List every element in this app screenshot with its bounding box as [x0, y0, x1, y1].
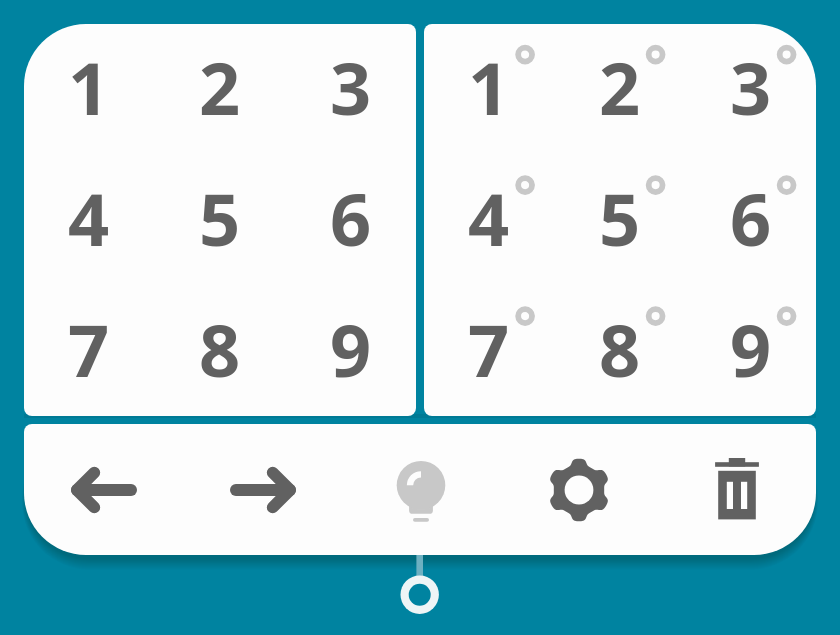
button[interactable]: 8 [154, 285, 285, 416]
button[interactable]: 7 [24, 285, 154, 416]
staticText: 7 [68, 300, 110, 398]
button[interactable]: 7 [424, 285, 554, 416]
button[interactable]: 2 [154, 24, 285, 154]
button[interactable]: 4 [424, 154, 554, 285]
staticText: 1 [468, 38, 510, 136]
staticText: 5 [599, 169, 641, 267]
button[interactable]: Forward [183, 424, 342, 555]
button[interactable]: Drag handle [384, 555, 456, 617]
staticText: 4 [468, 169, 510, 267]
button[interactable]: Delete [658, 424, 816, 555]
button[interactable]: Back [24, 424, 183, 555]
staticText: 3 [730, 38, 772, 136]
staticText: 6 [330, 169, 372, 267]
button[interactable]: 4 [24, 154, 154, 285]
button[interactable]: 3 [685, 24, 816, 154]
staticText: 8 [599, 300, 641, 398]
button[interactable]: 9 [285, 285, 416, 416]
staticText: 9 [330, 300, 372, 398]
button[interactable]: 6 [285, 154, 416, 285]
button[interactable]: 8 [554, 285, 685, 416]
staticText: 8 [199, 300, 241, 398]
button[interactable]: 1 [24, 24, 154, 154]
staticText: 7 [468, 300, 510, 398]
button[interactable]: Light [342, 424, 500, 555]
button[interactable]: 6 [685, 154, 816, 285]
staticText: 4 [68, 169, 110, 267]
button[interactable]: 2 [554, 24, 685, 154]
staticText: 2 [199, 38, 241, 136]
staticText: 2 [599, 38, 641, 136]
button[interactable]: Settings [500, 424, 658, 555]
staticText: 1 [68, 38, 110, 136]
button[interactable]: 9 [685, 285, 816, 416]
button[interactable]: 1 [424, 24, 554, 154]
staticText: 5 [199, 169, 241, 267]
staticText: 9 [730, 300, 772, 398]
button[interactable]: 3 [285, 24, 416, 154]
staticText: 3 [330, 38, 372, 136]
staticText: 6 [730, 169, 772, 267]
button[interactable]: 5 [154, 154, 285, 285]
button[interactable]: 5 [554, 154, 685, 285]
